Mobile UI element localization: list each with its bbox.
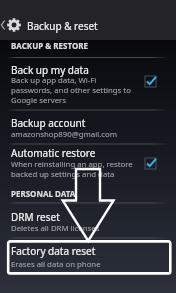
staticText: Back up my data bbox=[11, 63, 89, 77]
button[interactable] bbox=[0, 58, 176, 109]
staticText: When reinstalling an app, restore bbox=[11, 159, 133, 170]
staticText: Automatic restore bbox=[11, 146, 96, 160]
staticText: amazonshop890@gmail.com bbox=[11, 129, 118, 140]
staticText: BACKUP & RESTORE bbox=[11, 40, 88, 51]
button[interactable]: Checkbox bbox=[142, 73, 159, 90]
staticText: backed up settings and data bbox=[11, 169, 115, 180]
staticText: Backup & reset bbox=[27, 19, 98, 33]
staticText: Deletes all DRM licenses bbox=[11, 223, 100, 234]
button[interactable]: Checkbox bbox=[142, 155, 159, 172]
button[interactable]: Navigate up bbox=[0, 0, 176, 40]
staticText: Backup account bbox=[11, 116, 86, 130]
staticText: Erases all data on phone bbox=[11, 259, 101, 270]
staticText: Google servers bbox=[11, 95, 67, 106]
button[interactable] bbox=[0, 204, 176, 238]
button[interactable] bbox=[0, 111, 176, 144]
button[interactable] bbox=[0, 145, 176, 183]
staticText: Factory data reset bbox=[11, 244, 96, 258]
staticText: PERSONAL DATA bbox=[11, 188, 76, 199]
staticText: passwords, and other settings to bbox=[11, 85, 131, 96]
staticText: DRM reset bbox=[11, 210, 60, 224]
staticText: Back up app data, Wi-Fi bbox=[11, 75, 97, 86]
button[interactable] bbox=[0, 239, 176, 273]
